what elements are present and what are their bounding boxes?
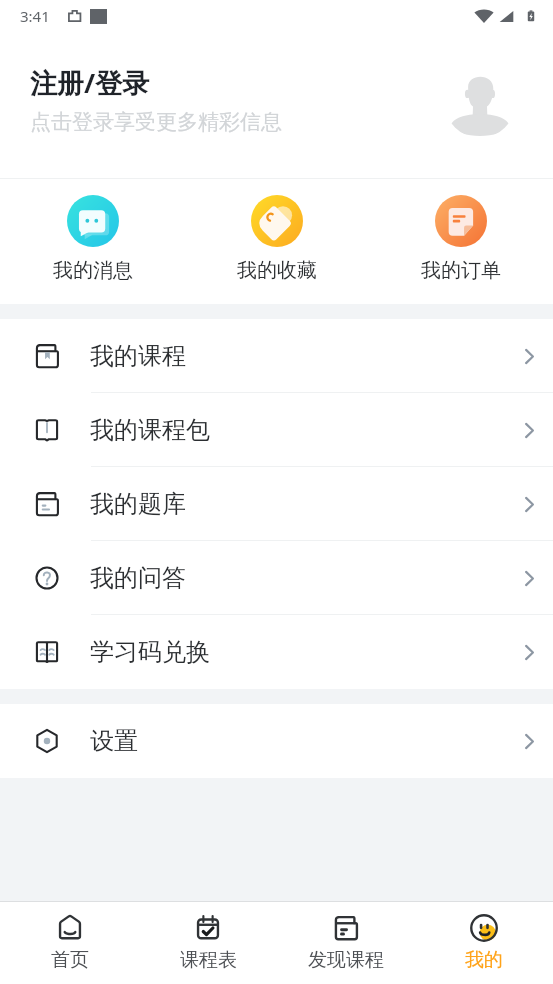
staticText: 注册/登录 [30, 64, 150, 101]
button[interactable]: 我的课程包 [0, 393, 553, 467]
staticText: 我的课程 [90, 341, 186, 371]
staticText: 我的收藏 [237, 258, 317, 282]
staticText: 学习码兑换 [90, 637, 210, 667]
staticText: 发现课程 [308, 948, 384, 972]
button[interactable]: 我的问答 [0, 541, 553, 615]
button[interactable]: 注册/登录 [0, 32, 553, 178]
button[interactable]: 首页 [0, 910, 139, 976]
staticText: 我的问答 [90, 563, 186, 593]
staticText: 3:41 [20, 6, 50, 26]
button[interactable]: 我的课程 [0, 319, 553, 393]
button[interactable]: 我的订单 [369, 179, 553, 304]
staticText: 我的题库 [90, 489, 186, 519]
button[interactable]: 课程表 [139, 910, 277, 976]
staticText: 我的订单 [421, 258, 501, 282]
staticText: 我的 [465, 948, 503, 972]
staticText: 点击登录享受更多精彩信息 [30, 109, 282, 135]
button[interactable]: Avatar, sign in [445, 68, 515, 138]
staticText: 设置 [90, 726, 138, 756]
staticText: 课程表 [180, 948, 237, 972]
button[interactable]: 我的收藏 [185, 179, 369, 304]
staticText: 我的消息 [53, 258, 133, 282]
staticText: 首页 [51, 948, 89, 972]
button[interactable]: 设置 [0, 704, 553, 778]
button[interactable]: 学习码兑换 [0, 615, 553, 689]
button[interactable]: 我的题库 [0, 467, 553, 541]
staticText: 我的课程包 [90, 415, 210, 445]
button[interactable]: 发现课程 [277, 910, 415, 976]
button[interactable]: 我的消息 [0, 179, 185, 304]
button[interactable]: 我的 [415, 910, 553, 976]
